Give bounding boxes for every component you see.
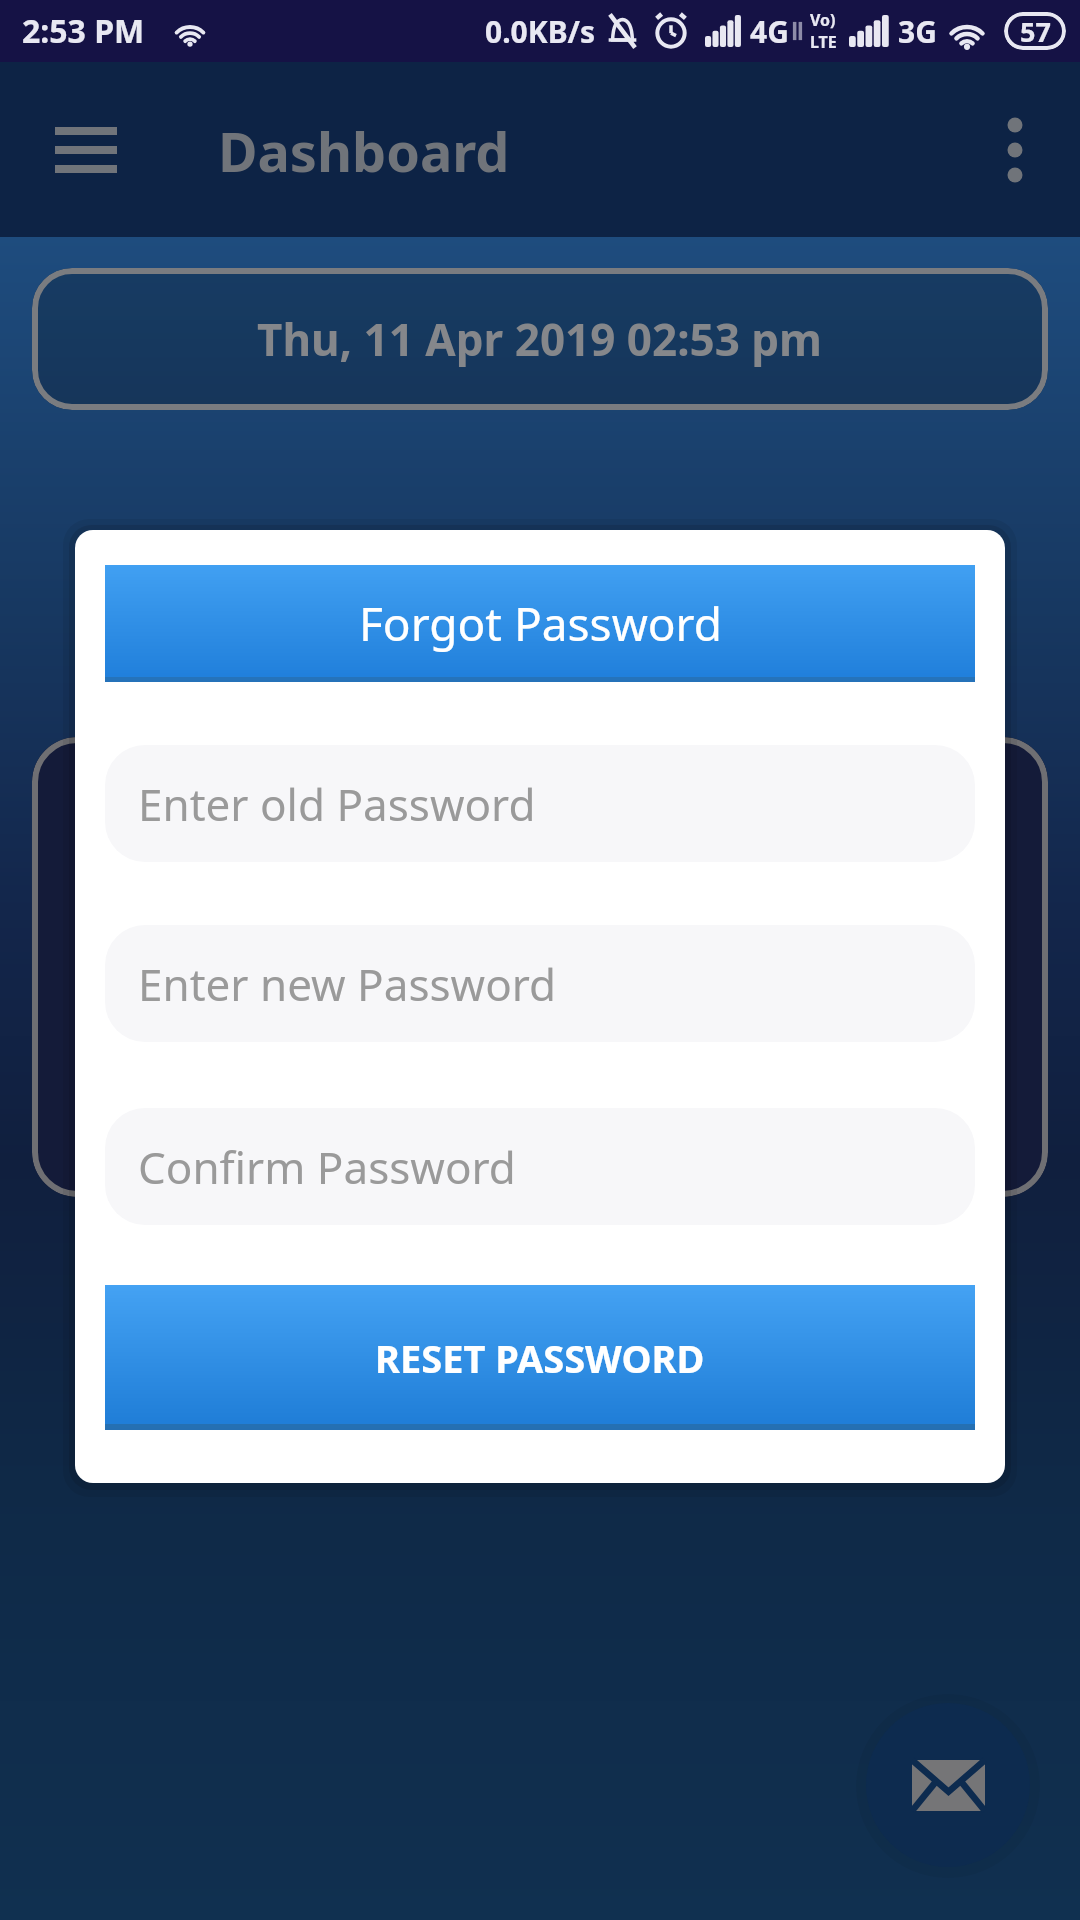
staticText: 4G xyxy=(750,11,789,52)
staticText: Thu, 11 Apr 2019 02:53 pm xyxy=(257,309,823,369)
staticText: Enter new Password xyxy=(138,954,557,1014)
button[interactable]: Thu, 11 Apr 2019 02:53 pm xyxy=(32,268,1048,410)
button[interactable]: Confirm Password xyxy=(105,1108,975,1225)
staticText: Enter old Password xyxy=(138,774,536,834)
staticText: 57 xyxy=(1020,13,1051,50)
button[interactable]: Enter old Password xyxy=(105,745,975,862)
staticText: 2:53 PM xyxy=(22,9,145,53)
button[interactable] xyxy=(40,117,132,183)
staticText: Confirm Password xyxy=(138,1137,516,1197)
button[interactable] xyxy=(866,1703,1030,1867)
staticText: Dashboard xyxy=(218,114,510,188)
staticText: Vo) LTE xyxy=(810,9,837,53)
button[interactable]: RESET PASSWORD xyxy=(105,1285,975,1430)
button[interactable] xyxy=(975,117,1055,183)
button[interactable]: Enter new Password xyxy=(105,925,975,1042)
staticText: 3G xyxy=(898,11,937,52)
staticText: RESET PASSWORD xyxy=(375,1332,705,1384)
staticText: 0.0KB/s xyxy=(485,11,596,52)
staticText: Forgot Password xyxy=(359,592,722,655)
